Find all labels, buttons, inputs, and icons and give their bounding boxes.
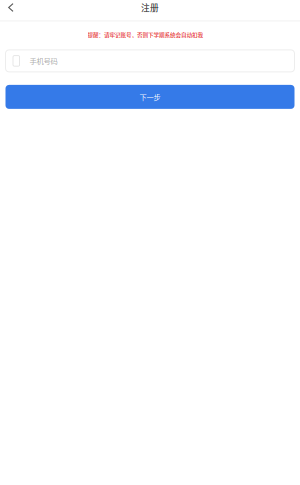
button[interactable]: 下一步 [5, 85, 294, 109]
staticText: 手机号码 [30, 56, 58, 66]
staticText: 提醒：请牢记账号，否则下学期系统会自动扣我 [87, 31, 203, 39]
button[interactable]: 手机号码 [5, 50, 294, 72]
staticText: 注册 [141, 1, 159, 14]
staticText: 下一步 [139, 92, 160, 102]
button[interactable]: 返回 [0, 2, 19, 13]
